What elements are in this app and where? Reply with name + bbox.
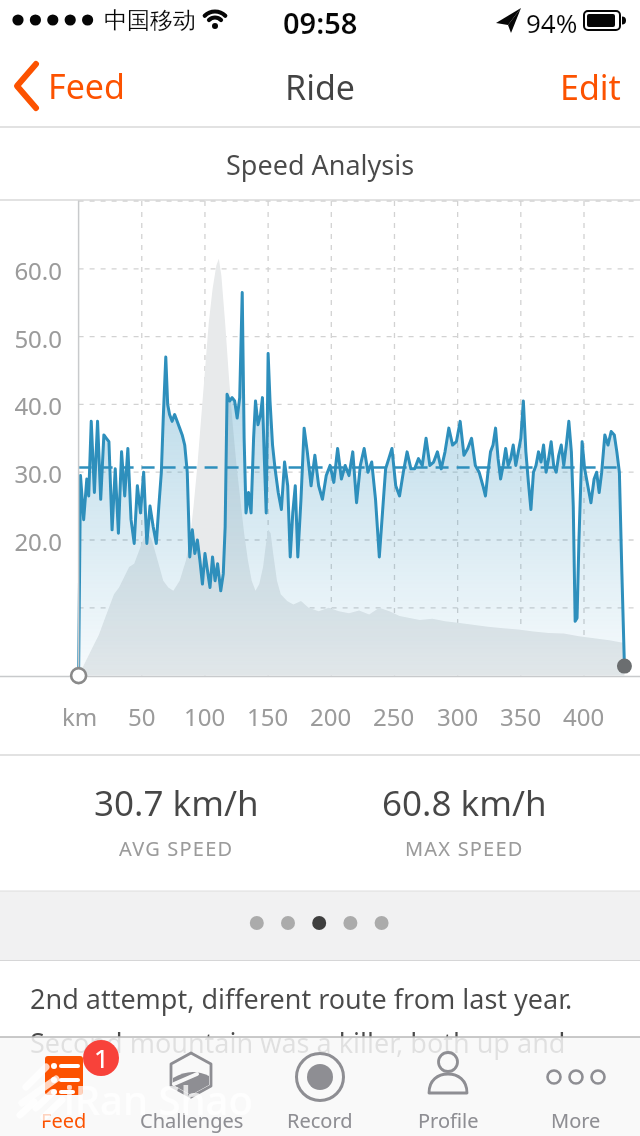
staticText: 200 [310, 700, 352, 730]
staticText: Record [287, 1107, 353, 1133]
staticText: 350 [500, 700, 542, 730]
button[interactable] [256, 1037, 384, 1136]
staticText: Speed Analysis [226, 146, 415, 183]
staticText: More [551, 1107, 601, 1133]
staticText: Feed [41, 1107, 87, 1133]
button[interactable] [0, 1037, 128, 1136]
staticText: 30.7 km/h [94, 779, 259, 825]
staticText: 100 [184, 700, 226, 730]
staticText: Edit [560, 64, 621, 108]
button[interactable] [128, 1037, 256, 1136]
staticText: AVG SPEED [119, 835, 234, 862]
staticText: MAX SPEED [405, 835, 524, 862]
staticText: 60.0 [14, 254, 62, 284]
staticText: 2nd attempt, different route from last y… [30, 980, 573, 1017]
button[interactable]: Edit [545, 64, 635, 108]
staticText: Second mountain was a killer, both up an… [30, 1024, 566, 1061]
staticText: Challenges [140, 1107, 244, 1133]
staticText: 150 [247, 700, 289, 730]
staticText: 30.0 [14, 457, 62, 487]
button[interactable] [384, 1037, 512, 1136]
staticText: 1 [94, 1040, 109, 1074]
button[interactable]: Feed [10, 58, 140, 114]
staticText: 50.0 [14, 322, 62, 352]
staticText: Ride [285, 64, 356, 108]
button[interactable] [512, 1037, 640, 1136]
staticText: 40.0 [14, 389, 62, 419]
staticText: 50 [128, 700, 156, 730]
staticText: Feed [48, 63, 125, 109]
staticText: 20.0 [14, 525, 62, 555]
staticText: 400 [563, 700, 605, 730]
staticText: 300 [437, 700, 479, 730]
staticText: km [62, 700, 98, 730]
staticText: 09:58 [283, 3, 358, 37]
staticText: Profile [418, 1107, 479, 1133]
staticText: 60.8 km/h [382, 779, 547, 825]
staticText: 250 [373, 700, 415, 730]
staticText: 94% [526, 5, 578, 35]
staticText: 中国移动 [104, 6, 196, 35]
staticText: iRan Shao [64, 1072, 253, 1118]
